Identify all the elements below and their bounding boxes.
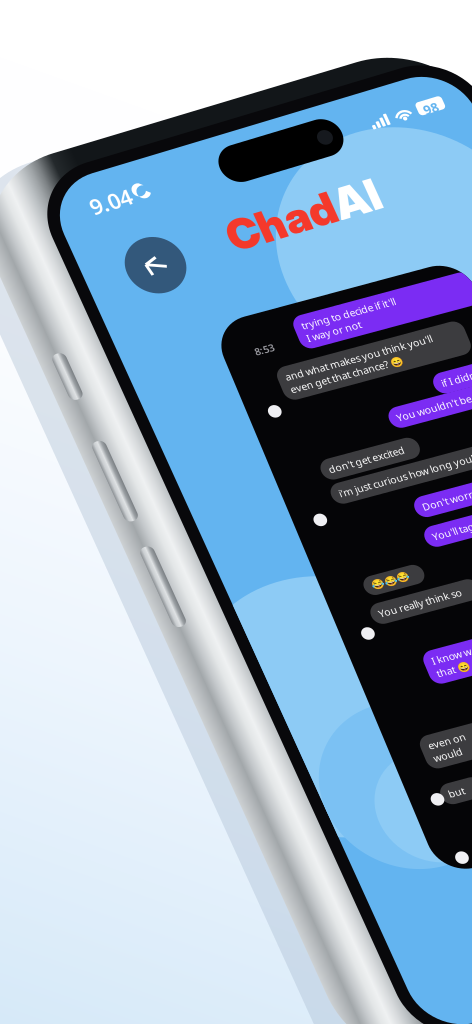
staticText: You wouldn't be ask <box>125 121 211 133</box>
staticText: 😂😂😂 <box>44 266 80 277</box>
staticText: I know w that 😄 <box>68 347 105 372</box>
staticText: Chad <box>136 69 238 117</box>
staticText: if I didn <box>175 101 207 113</box>
staticText: Don't worry <box>115 207 167 219</box>
staticText: You'll tag <box>113 236 152 248</box>
staticText: i'm just curious how long you'll last <box>49 175 196 187</box>
staticText: don't get excited <box>49 151 120 163</box>
staticText: AI <box>238 69 280 117</box>
staticText: and <box>105 388 122 400</box>
staticText: You really think so <box>40 292 118 304</box>
staticText: even on would <box>35 422 70 447</box>
